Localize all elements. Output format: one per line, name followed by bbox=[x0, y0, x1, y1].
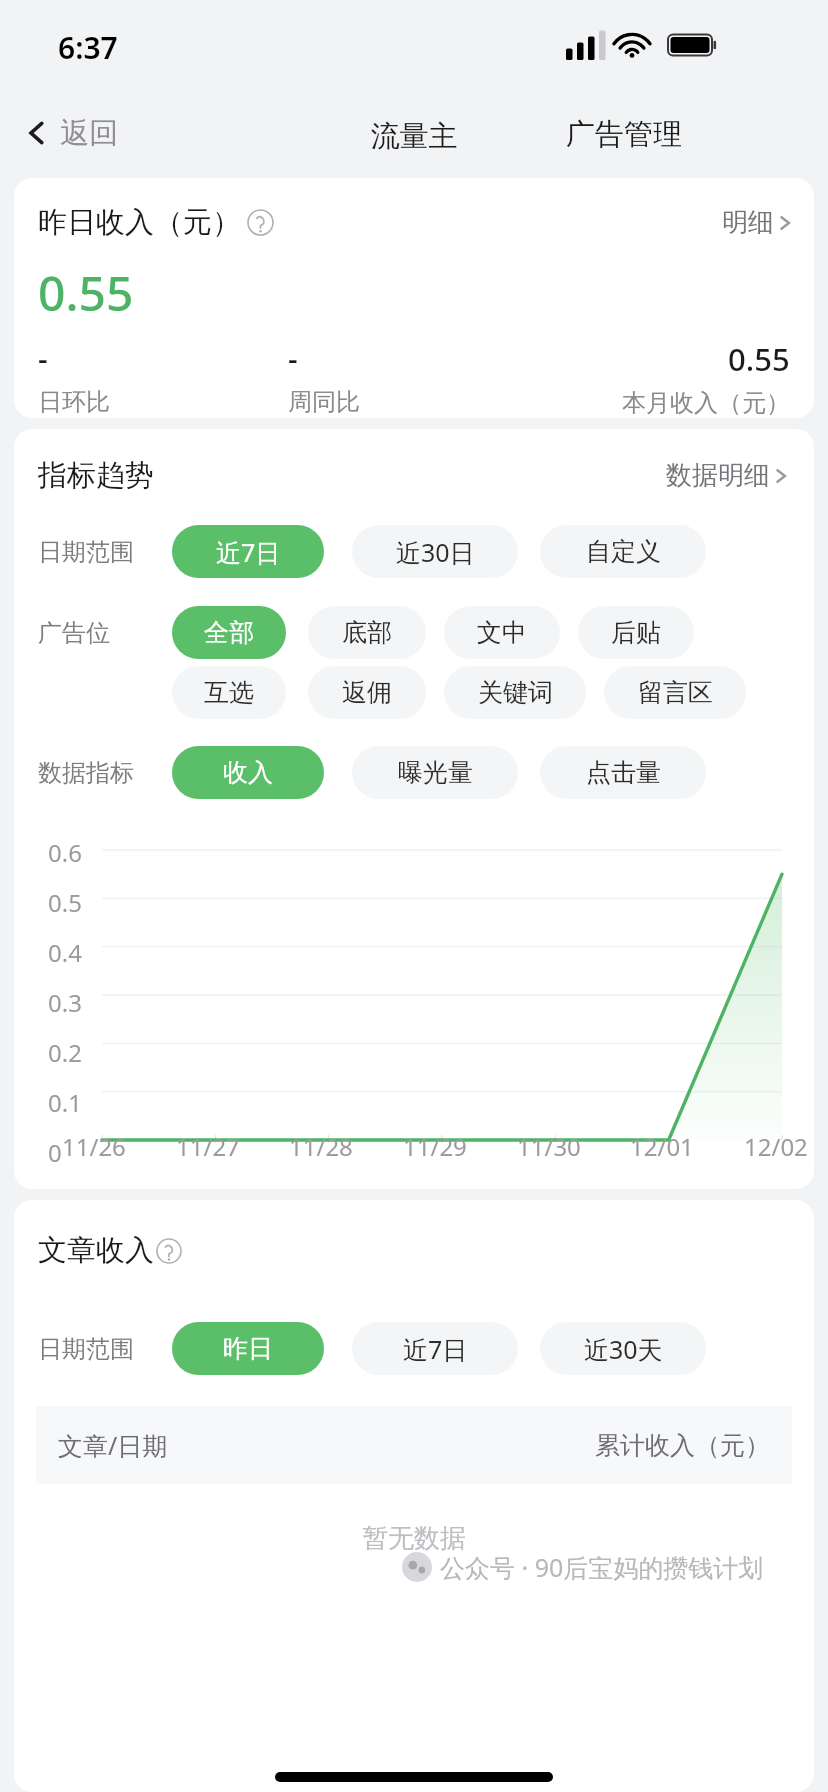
staticText: 日环比 bbox=[38, 387, 110, 417]
staticText: 6:37 bbox=[58, 27, 118, 68]
button[interactable]: 数据明细 bbox=[662, 455, 796, 496]
staticText: 底部 bbox=[342, 617, 392, 648]
staticText: 0.2 bbox=[48, 1036, 82, 1069]
staticText: 12/01 bbox=[630, 1130, 694, 1163]
staticText: 数据指标 bbox=[38, 758, 134, 788]
staticText: 点击量 bbox=[586, 757, 661, 788]
button[interactable]: 近7日 bbox=[352, 1322, 518, 1375]
staticText: 文中 bbox=[477, 617, 527, 648]
button[interactable]: 全部 bbox=[172, 606, 286, 659]
staticText: 12/02 bbox=[744, 1130, 808, 1163]
staticText: 11/28 bbox=[289, 1130, 353, 1163]
button[interactable]: 曝光量 bbox=[352, 746, 518, 799]
staticText: 0.55 bbox=[728, 338, 790, 380]
staticText: 自定义 bbox=[586, 536, 661, 567]
button[interactable]: 后贴 bbox=[578, 606, 694, 659]
staticText: 近7日 bbox=[403, 1332, 468, 1366]
button[interactable]: 收入 bbox=[172, 746, 324, 799]
button[interactable]: 自定义 bbox=[540, 525, 706, 578]
staticText: 0.5 bbox=[48, 886, 82, 919]
staticText: 0.4 bbox=[48, 936, 82, 969]
staticText: 流量主 bbox=[0, 118, 828, 155]
staticText: 0.6 bbox=[48, 836, 82, 869]
button[interactable]: 底部 bbox=[308, 606, 426, 659]
staticText: 本月收入（元） bbox=[622, 388, 790, 418]
button[interactable]: 近30天 bbox=[540, 1322, 706, 1375]
button[interactable]: 留言区 bbox=[604, 666, 746, 719]
staticText: 11/26 bbox=[62, 1130, 126, 1163]
button[interactable]: 近7日 bbox=[172, 525, 324, 578]
button[interactable]: 返回 bbox=[14, 100, 126, 166]
staticText: 昨日收入（元） bbox=[38, 204, 241, 241]
staticText: 曝光量 bbox=[398, 757, 473, 788]
staticText: 11/30 bbox=[517, 1130, 581, 1163]
staticText: 数据明细 bbox=[666, 459, 770, 492]
staticText: 关键词 bbox=[478, 677, 553, 708]
staticText: 11/29 bbox=[403, 1130, 467, 1163]
button[interactable]: 明细 bbox=[718, 202, 800, 243]
staticText: 留言区 bbox=[638, 677, 713, 708]
staticText: 昨日 bbox=[223, 1333, 273, 1364]
staticText: 互选 bbox=[204, 677, 254, 708]
staticText: 后贴 bbox=[611, 617, 661, 648]
staticText: 近30日 bbox=[396, 535, 475, 569]
staticText: 累计收入（元） bbox=[595, 1430, 770, 1461]
staticText: 指标趋势 bbox=[38, 457, 154, 494]
staticText: 收入 bbox=[223, 757, 273, 788]
staticText: 文章收入 bbox=[38, 1232, 154, 1269]
button[interactable]: 近30日 bbox=[352, 525, 518, 578]
staticText: - bbox=[288, 338, 298, 379]
button[interactable]: 点击量 bbox=[540, 746, 706, 799]
staticText: 全部 bbox=[204, 617, 254, 648]
button[interactable]: 互选 bbox=[172, 666, 286, 719]
staticText: 返佣 bbox=[342, 677, 392, 708]
staticText: - bbox=[38, 338, 48, 379]
button[interactable]: 关键词 bbox=[444, 666, 586, 719]
staticText: 返回 bbox=[60, 115, 118, 152]
staticText: 11/27 bbox=[176, 1130, 240, 1163]
staticText: 0 bbox=[48, 1136, 62, 1166]
staticText: 广告位 bbox=[38, 618, 110, 648]
staticText: 0.1 bbox=[48, 1086, 82, 1119]
staticText: 文章/日期 bbox=[58, 1428, 168, 1462]
button[interactable]: 文中 bbox=[444, 606, 560, 659]
button[interactable]: 返佣 bbox=[308, 666, 426, 719]
staticText: 明细 bbox=[722, 206, 774, 239]
staticText: 日期范围 bbox=[38, 537, 134, 567]
staticText: 0.55 bbox=[38, 260, 134, 325]
button[interactable]: 广告管理 bbox=[560, 106, 688, 163]
staticText: 近30天 bbox=[584, 1332, 663, 1366]
staticText: 近7日 bbox=[216, 535, 281, 569]
staticText: 0.3 bbox=[48, 986, 82, 1019]
button[interactable]: 昨日 bbox=[172, 1322, 324, 1375]
staticText: 周同比 bbox=[288, 387, 360, 417]
staticText: 公众号 · 90后宝妈的攒钱计划 bbox=[440, 1550, 764, 1584]
staticText: 日期范围 bbox=[38, 1334, 134, 1364]
staticText: 暂无数据 bbox=[14, 1522, 814, 1555]
